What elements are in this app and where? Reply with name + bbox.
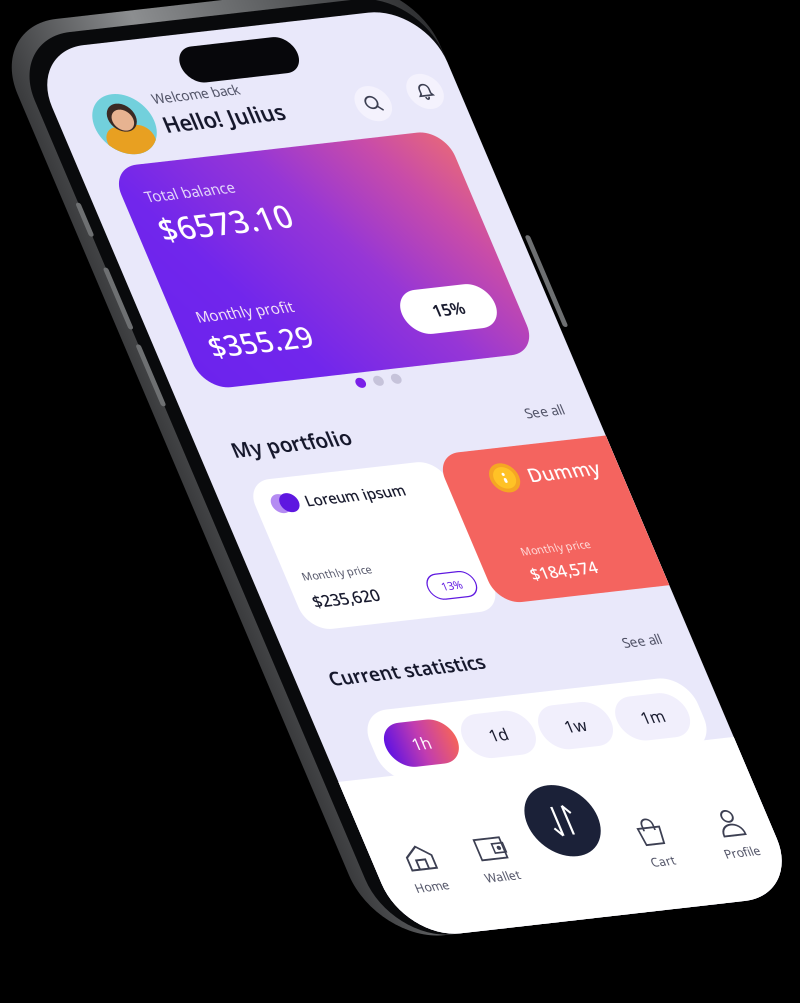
button[interactable]: 1w (216, 682, 288, 726)
button[interactable]: 1m (294, 682, 366, 726)
staticText: See all (331, 621, 370, 639)
staticText: Welcome back (100, 50, 188, 68)
staticText: My portfolio (33, 390, 153, 417)
staticText: $355.29 (53, 284, 157, 321)
staticText: Total balance (53, 142, 143, 161)
button[interactable]: Notifications (349, 64, 384, 99)
staticText: $184,574 (270, 544, 337, 565)
staticText: Monthly profit (53, 262, 151, 282)
staticText: $6573.10 (53, 164, 187, 205)
button[interactable]: Loreum ipsum (33, 435, 230, 585)
button[interactable]: See all (308, 619, 370, 641)
staticText: Dummy (308, 447, 380, 472)
staticText: Loreum ipsum (83, 450, 184, 469)
button[interactable]: Dummy (227, 430, 424, 580)
staticText: Profile (343, 835, 379, 851)
staticText: Hello! Julius (100, 71, 223, 99)
staticText: 15% (284, 281, 316, 303)
button[interactable]: Profile (321, 801, 400, 851)
